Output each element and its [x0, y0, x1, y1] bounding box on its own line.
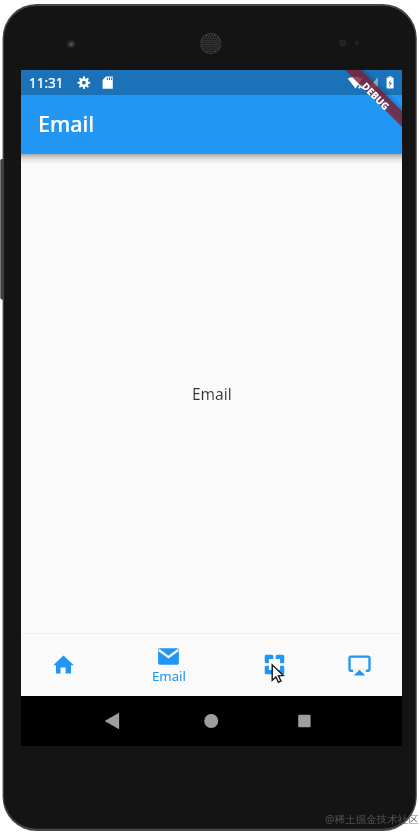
button[interactable]: Home — [21, 634, 105, 696]
staticText: DEBUG — [359, 80, 392, 113]
button[interactable]: Dashboard — [232, 634, 317, 696]
button[interactable]: Email — [105, 634, 232, 696]
staticText: Email — [152, 667, 186, 685]
staticText: Email — [38, 109, 94, 138]
button[interactable]: Cast screen — [317, 634, 402, 696]
staticText: Email — [192, 383, 232, 404]
staticText: @稀土掘金技术社区 — [325, 812, 419, 826]
staticText: 11:31 — [29, 74, 64, 92]
